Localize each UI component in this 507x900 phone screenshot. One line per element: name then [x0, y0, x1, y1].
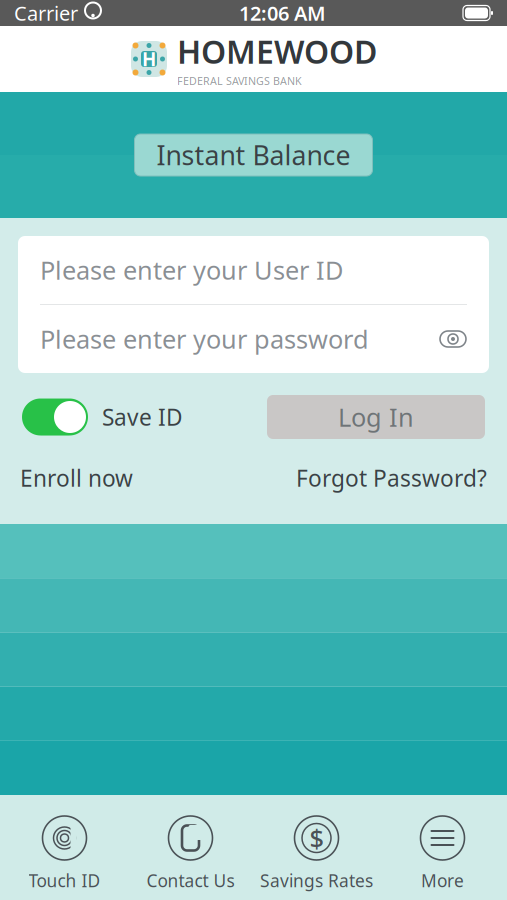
button[interactable]: Touch ID	[1, 813, 127, 893]
button[interactable]: Contact Us	[127, 813, 253, 893]
staticText: Savings Rates	[260, 869, 373, 892]
staticText: FEDERAL SAVINGS BANK	[177, 74, 302, 88]
staticText: Contact Us	[146, 869, 234, 892]
button[interactable]: Instant Balance	[134, 134, 372, 176]
button[interactable]: Please enter your password	[18, 305, 489, 373]
staticText: Touch ID	[28, 869, 100, 892]
staticText: H	[142, 47, 156, 71]
staticText: 12:06 AM	[239, 0, 326, 26]
staticText: Forgot Password?	[296, 463, 487, 493]
staticText: Log In	[338, 400, 414, 434]
button[interactable]: Log In	[267, 395, 485, 439]
staticText: Please enter your User ID	[40, 253, 343, 287]
button[interactable]: Please enter your User ID	[18, 236, 489, 304]
staticText: HOMEWOOD	[177, 30, 377, 73]
button[interactable]: More	[379, 813, 505, 893]
staticText: $	[309, 821, 323, 855]
staticText: Please enter your password	[40, 322, 369, 356]
staticText: Enroll now	[20, 463, 133, 493]
staticText: Save ID	[102, 402, 183, 432]
staticText: More	[421, 869, 464, 892]
button[interactable]: Savings Rates	[253, 813, 379, 893]
staticText: Carrier	[14, 0, 78, 26]
button[interactable]: Forgot Password?	[296, 463, 487, 493]
button[interactable]: Enroll now	[20, 463, 133, 493]
staticText: Instant Balance	[156, 137, 350, 173]
button[interactable]: Save ID	[22, 398, 183, 435]
